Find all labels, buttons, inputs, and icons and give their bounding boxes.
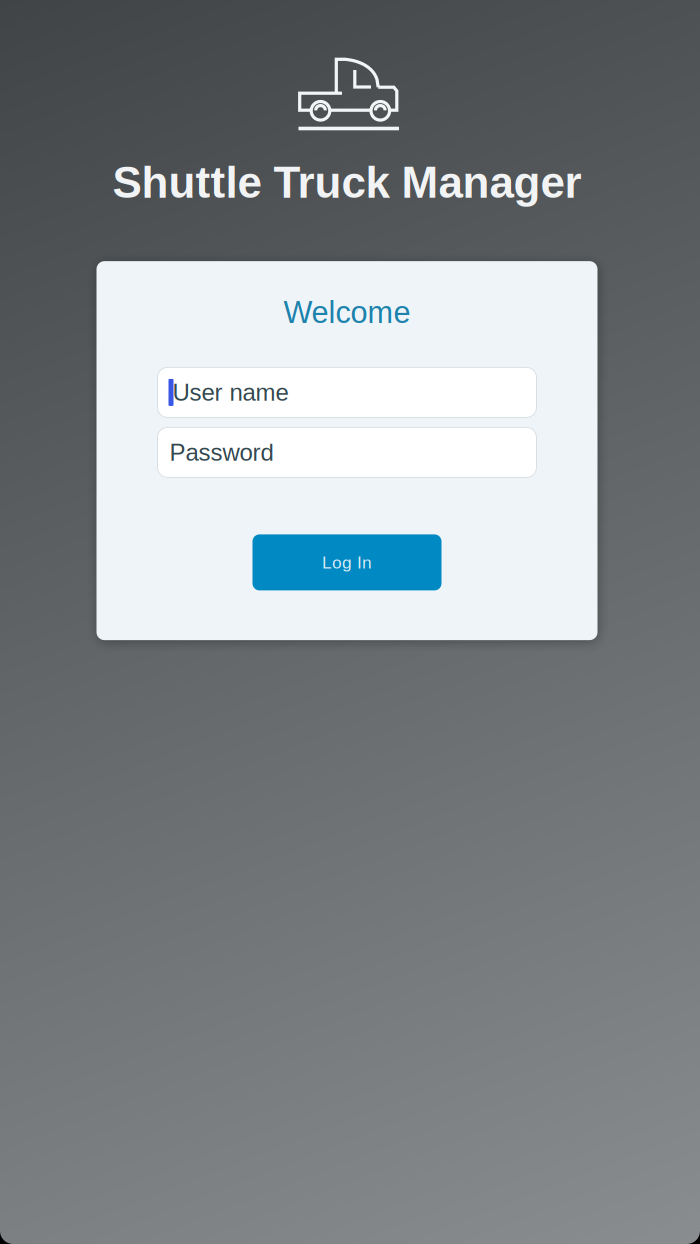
staticText: Welcome xyxy=(283,295,410,329)
button[interactable]: Password xyxy=(157,427,536,477)
staticText: Shuttle Truck Manager xyxy=(112,158,581,207)
button[interactable]: User name xyxy=(157,367,536,417)
button[interactable]: Log In xyxy=(252,534,441,590)
staticText: Log In xyxy=(322,553,372,572)
staticText: User name xyxy=(172,379,288,406)
staticText: Password xyxy=(169,439,273,466)
